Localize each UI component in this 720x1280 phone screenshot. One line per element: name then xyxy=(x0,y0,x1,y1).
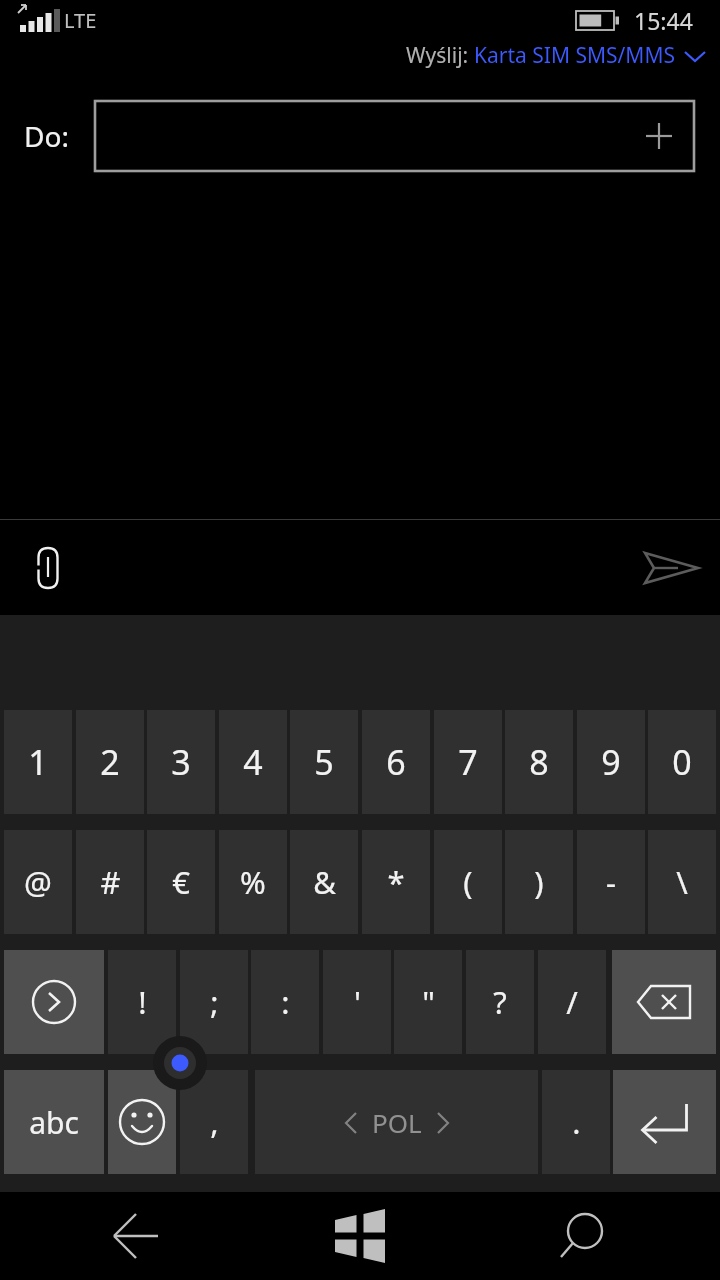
staticText: 15:44 xyxy=(634,5,693,36)
staticText: ( xyxy=(463,861,473,903)
staticText: / xyxy=(566,981,578,1023)
button[interactable]: - xyxy=(577,830,645,934)
staticText: , xyxy=(210,1101,219,1143)
button[interactable]: % xyxy=(219,830,287,934)
staticText: ; xyxy=(210,981,219,1023)
button[interactable]: . xyxy=(542,1070,610,1174)
button[interactable]: Add recipient xyxy=(644,121,674,151)
staticText: POL xyxy=(372,1105,422,1140)
button[interactable]: , xyxy=(180,1070,248,1174)
button[interactable]: & xyxy=(290,830,358,934)
button[interactable]: Emoji xyxy=(108,1070,176,1174)
button[interactable]: ; xyxy=(180,950,248,1054)
staticText: % xyxy=(240,861,266,903)
staticText: € xyxy=(172,861,190,903)
staticText: abc xyxy=(29,1102,79,1143)
staticText: 9 xyxy=(601,739,621,785)
button[interactable]: More symbols xyxy=(4,950,104,1054)
staticText: @ xyxy=(24,861,52,903)
button[interactable]: POL xyxy=(255,1070,538,1174)
staticText: 1 xyxy=(28,739,48,785)
button[interactable]: Backspace xyxy=(612,950,716,1054)
button[interactable]: 5 xyxy=(290,710,358,814)
staticText: 5 xyxy=(314,739,334,785)
button[interactable]: Add recipient xyxy=(95,101,694,171)
button[interactable]: 4 xyxy=(219,710,287,814)
button[interactable]: # xyxy=(76,830,144,934)
staticText: & xyxy=(313,861,336,903)
button[interactable]: ) xyxy=(505,830,573,934)
staticText: ? xyxy=(493,981,507,1023)
button[interactable]: 8 xyxy=(505,710,573,814)
button[interactable]: ( xyxy=(434,830,502,934)
button[interactable]: 9 xyxy=(577,710,645,814)
button[interactable]: abc xyxy=(4,1070,104,1174)
button[interactable]: ! xyxy=(108,950,176,1054)
button[interactable]: \ xyxy=(648,830,716,934)
button[interactable]: / xyxy=(538,950,606,1054)
button[interactable]: Send xyxy=(640,544,702,592)
button[interactable]: ' xyxy=(323,950,391,1054)
button[interactable]: * xyxy=(362,830,430,934)
staticText: ) xyxy=(534,861,544,903)
button[interactable]: 6 xyxy=(362,710,430,814)
button[interactable]: Back xyxy=(100,1206,170,1266)
button[interactable]: 2 xyxy=(76,710,144,814)
button[interactable]: 1 xyxy=(4,710,72,814)
button[interactable]: 0 xyxy=(648,710,716,814)
button[interactable]: € xyxy=(147,830,215,934)
button[interactable]: 7 xyxy=(434,710,502,814)
staticText: 3 xyxy=(171,739,191,785)
button[interactable]: Attach xyxy=(22,542,74,594)
staticText: ' xyxy=(354,981,361,1023)
staticText: - xyxy=(606,861,616,903)
staticText: ! xyxy=(138,981,147,1023)
staticText: 0 xyxy=(672,739,692,785)
staticText: Karta SIM SMS/MMS xyxy=(474,41,675,70)
staticText: Wyślij: xyxy=(406,41,474,70)
button[interactable]: Start xyxy=(329,1208,391,1264)
button[interactable]: Enter xyxy=(613,1070,716,1174)
staticText: : xyxy=(281,981,290,1023)
staticText: \ xyxy=(676,861,688,903)
staticText: 7 xyxy=(458,739,478,785)
button[interactable]: @ xyxy=(4,830,72,934)
staticText: Do: xyxy=(24,117,69,155)
button[interactable]: : xyxy=(251,950,319,1054)
staticText: # xyxy=(100,861,121,903)
staticText: 6 xyxy=(386,739,406,785)
button[interactable]: " xyxy=(394,950,462,1054)
button[interactable]: Search xyxy=(548,1206,618,1266)
staticText: LTE xyxy=(64,7,97,34)
staticText: 2 xyxy=(100,739,120,785)
button[interactable]: ? xyxy=(466,950,534,1054)
button[interactable]: Karta SIM SMS/MMS xyxy=(474,41,720,70)
button[interactable]: 3 xyxy=(147,710,215,814)
staticText: 4 xyxy=(243,739,263,785)
staticText: . xyxy=(572,1101,581,1143)
staticText: * xyxy=(387,861,405,903)
staticText: " xyxy=(422,981,435,1023)
staticText: 8 xyxy=(529,739,549,785)
